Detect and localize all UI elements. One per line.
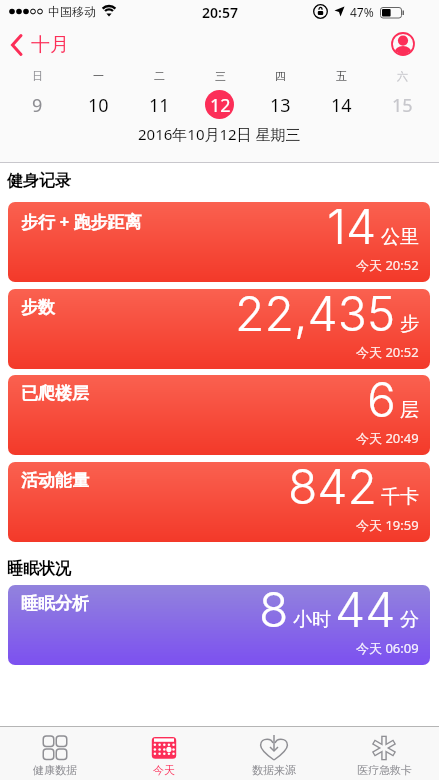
button[interactable]: 十月 xyxy=(10,24,69,66)
staticText: 三 xyxy=(215,69,226,83)
button[interactable]: 已爬楼层 xyxy=(8,375,430,455)
staticText: 健身记录 xyxy=(7,171,71,191)
staticText: 五 xyxy=(336,69,347,83)
button[interactable]: 步数 xyxy=(8,289,430,369)
staticText: 睡眠状况 xyxy=(7,559,71,579)
staticText: 今天 20:52 xyxy=(356,256,419,274)
staticText: 6 xyxy=(367,375,396,428)
staticText: 步行 + 跑步距离 xyxy=(21,210,142,233)
staticText: 11 xyxy=(149,93,170,118)
staticText: 千卡 xyxy=(381,485,419,509)
staticText: 睡眠分析 xyxy=(21,593,89,614)
button[interactable]: 医疗急救卡 xyxy=(329,727,439,780)
staticText: 44 xyxy=(335,585,396,638)
staticText: 四 xyxy=(275,69,286,83)
button[interactable]: 活动能量 xyxy=(8,462,430,542)
staticText: 今天 06:09 xyxy=(356,639,419,657)
staticText: 公里 xyxy=(381,225,419,249)
staticText: 步数 xyxy=(21,297,55,318)
staticText: 步 xyxy=(400,312,419,336)
staticText: 中国移动 xyxy=(48,4,96,19)
button[interactable]: 数据来源 xyxy=(219,727,329,780)
staticText: 今天 20:49 xyxy=(356,429,419,447)
staticText: 10 xyxy=(88,93,109,118)
staticText: 数据来源 xyxy=(252,763,296,777)
staticText: 47% xyxy=(350,4,374,20)
staticText: 日 xyxy=(32,69,43,83)
staticText: 2016年10月12日 星期三 xyxy=(138,124,301,144)
staticText: 健康数据 xyxy=(33,763,77,777)
staticText: 12 xyxy=(210,93,231,118)
button[interactable]: 今天 xyxy=(109,727,219,780)
button[interactable]: 健康数据 xyxy=(0,727,109,780)
staticText: 今天 19:59 xyxy=(356,516,419,534)
staticText: 二 xyxy=(154,69,165,83)
staticText: 20:57 xyxy=(202,3,238,22)
staticText: 一 xyxy=(93,69,104,83)
button[interactable]: 步行 + 跑步距离 xyxy=(8,202,430,282)
staticText: 14 xyxy=(331,93,352,118)
staticText: 活动能量 xyxy=(21,470,89,491)
staticText: 14 xyxy=(327,202,377,255)
staticText: 22,435 xyxy=(235,289,396,342)
staticText: 15 xyxy=(392,93,413,118)
button[interactable] xyxy=(391,32,415,56)
staticText: 层 xyxy=(400,398,419,422)
button[interactable] xyxy=(205,90,234,119)
staticText: 六 xyxy=(397,69,408,83)
staticText: 小时 xyxy=(293,608,331,632)
staticText: 医疗急救卡 xyxy=(357,763,412,777)
staticText: 13 xyxy=(270,93,291,118)
staticText: 已爬楼层 xyxy=(21,383,89,404)
staticText: 842 xyxy=(288,462,377,515)
staticText: 9 xyxy=(32,93,43,118)
staticText: 分 xyxy=(400,608,419,632)
button[interactable]: 睡眠分析 xyxy=(8,585,430,665)
staticText: 十月 xyxy=(31,33,69,57)
staticText: 今天 xyxy=(153,763,175,777)
staticText: 8 xyxy=(259,585,289,638)
staticText: 今天 20:52 xyxy=(356,343,419,361)
